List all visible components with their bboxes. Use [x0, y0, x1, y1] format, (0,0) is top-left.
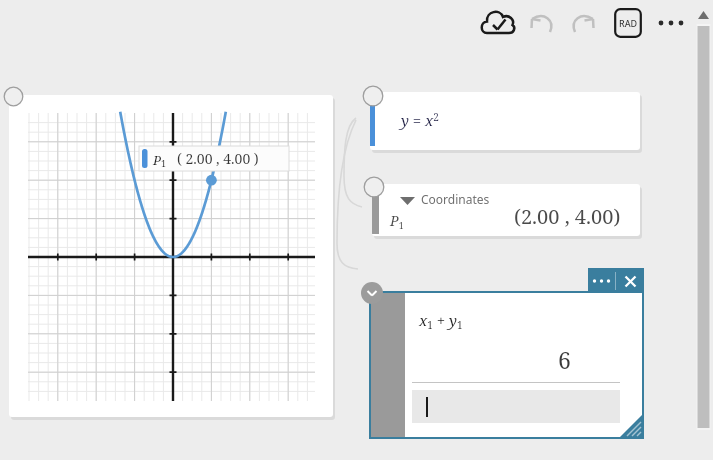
button[interactable]: Save to cloud [479, 6, 515, 42]
button[interactable]: Resize window [618, 413, 644, 439]
staticText: y = x2 [401, 110, 439, 130]
staticText: (2.00 , 4.00) [514, 203, 621, 230]
staticText: Coordinates [421, 191, 490, 207]
button[interactable]: Window menu [588, 268, 615, 294]
button[interactable]: Drag handle [362, 85, 384, 107]
button[interactable]: Drag handle [3, 86, 24, 107]
button[interactable]: Redo [567, 8, 601, 38]
button[interactable]: P1 [139, 146, 289, 171]
button[interactable]: More options [655, 10, 687, 36]
staticText: 6 [558, 344, 571, 375]
button[interactable] [412, 390, 620, 423]
staticText: ( 2.00 , 4.00 ) [177, 149, 259, 168]
button[interactable]: Coordinates [372, 184, 640, 236]
button[interactable]: P1 [9, 95, 333, 417]
staticText: P1 [390, 211, 404, 231]
button[interactable]: y = x2 [370, 92, 640, 150]
staticText: RAD [619, 17, 638, 29]
button[interactable]: Close [617, 268, 644, 294]
button[interactable]: Collapse window [361, 282, 383, 304]
staticText: P1 [153, 151, 167, 170]
button[interactable]: Undo [524, 8, 558, 38]
button[interactable]: Angle unit radians [614, 8, 642, 38]
staticText: x1 + y1 [419, 310, 463, 332]
button[interactable]: Drag handle [363, 176, 385, 198]
